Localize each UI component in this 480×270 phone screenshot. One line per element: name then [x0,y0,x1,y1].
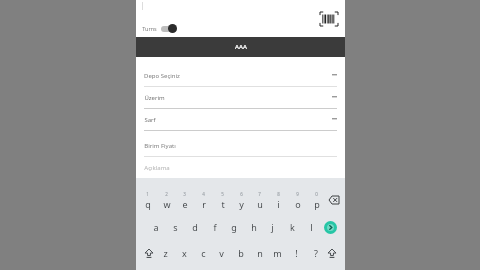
staticText: 2 [165,191,168,197]
staticText: q [145,198,151,210]
staticText: 1 [146,191,149,197]
button[interactable]: ! [289,242,304,264]
button[interactable]: 3 [177,191,192,210]
button[interactable]: Turns [142,24,177,33]
button[interactable]: n [252,242,267,264]
button[interactable]: Üzerim [136,87,345,109]
button[interactable]: m [270,242,285,264]
staticText: h [251,221,257,233]
staticText: d [192,221,198,233]
staticText: n [257,247,263,259]
button[interactable]: Backspace [327,190,341,210]
staticText: Depo Seçiniz [144,72,180,80]
staticText: a [153,221,159,233]
staticText: 7 [258,191,261,197]
button[interactable]: Depo Seçiniz [136,65,345,87]
button[interactable]: z [158,242,173,264]
staticText: m [273,247,282,259]
staticText: l [310,221,313,233]
staticText: 9 [296,191,299,197]
staticText: e [182,198,188,210]
staticText: c [201,247,206,259]
button[interactable]: ? [308,242,323,264]
button[interactable]: k [285,216,300,238]
staticText: 4 [202,191,205,197]
staticText: s [173,221,178,233]
staticText: t [221,198,225,210]
button[interactable]: l [304,216,319,238]
staticText: Üzerim [144,94,165,102]
button[interactable]: f [207,216,222,238]
staticText: Birim Fiyatı [144,142,176,150]
staticText: Turns [142,25,157,32]
button[interactable]: 4 [196,191,211,210]
staticText: i [277,198,280,210]
button[interactable]: c [196,242,211,264]
button[interactable]: Sarf [136,109,345,131]
button[interactable]: Shift [143,243,155,263]
button[interactable]: a [148,216,163,238]
button[interactable]: Enter [324,221,337,234]
button[interactable]: x [177,242,192,264]
button[interactable]: Scan barcode [319,11,339,27]
staticText: v [219,247,224,259]
staticText: f [213,221,217,233]
staticText: Açıklama [144,164,170,172]
staticText: 6 [240,191,243,197]
staticText: u [257,198,263,210]
staticText: p [314,198,320,210]
button[interactable]: 1 [140,191,155,210]
staticText: x [182,247,187,259]
button[interactable]: 6 [234,191,249,210]
button[interactable]: 9 [290,191,305,210]
staticText: AAA [235,43,247,51]
staticText: 3 [183,191,186,197]
staticText: z [163,247,168,259]
button[interactable]: h [246,216,261,238]
staticText: Sarf [144,116,156,124]
staticText: r [202,198,206,210]
button[interactable]: v [214,242,229,264]
button[interactable]: 2 [159,191,174,210]
button[interactable]: b [233,242,248,264]
staticText: 5 [221,191,224,197]
button[interactable]: s [168,216,183,238]
button[interactable]: 0 [309,191,324,210]
staticText: k [290,221,295,233]
button[interactable]: d [187,216,202,238]
button[interactable]: g [226,216,241,238]
staticText: ! [295,247,298,259]
button[interactable]: Açıklama [136,157,345,178]
staticText: y [239,198,244,210]
staticText: o [295,198,301,210]
staticText: w [163,198,171,210]
staticText: 0 [315,191,318,197]
button[interactable]: Birim Fiyatı [136,135,345,157]
staticText: g [231,221,237,233]
button[interactable]: 8 [271,191,286,210]
button[interactable]: 5 [215,191,230,210]
staticText: ? [314,247,318,259]
button[interactable]: Shift [326,243,338,263]
button[interactable]: j [265,216,280,238]
button[interactable]: 7 [252,191,267,210]
staticText: b [238,247,244,259]
staticText: 8 [277,191,280,197]
staticText: j [271,221,274,233]
